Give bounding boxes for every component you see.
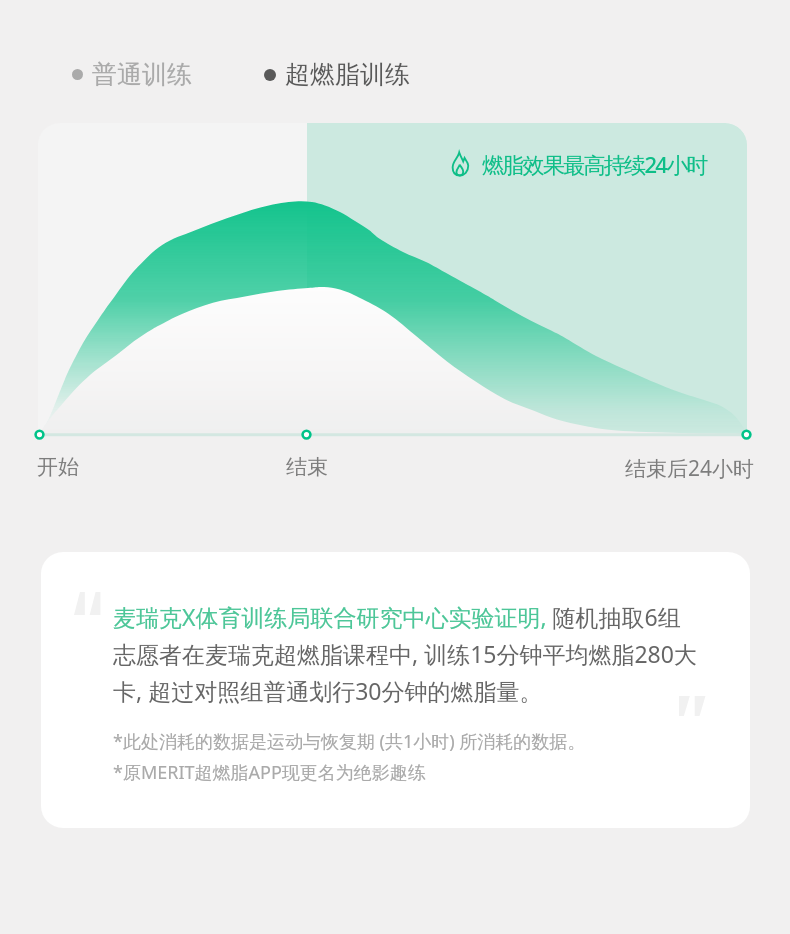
staticText: 超燃脂训练 bbox=[285, 59, 410, 90]
staticText: 开始 bbox=[37, 454, 79, 480]
staticText: *原MERIT超燃脂APP现更名为绝影趣练 bbox=[113, 760, 426, 785]
button[interactable]: 超燃脂训练 bbox=[264, 59, 410, 90]
staticText: 燃脂效果最高持续24小时 bbox=[482, 149, 707, 179]
button[interactable]: 普通训练 bbox=[72, 59, 192, 90]
staticText: 麦瑞克X体育训练局联合研究中心实验证明, 随机抽取6组志愿者在麦瑞克超燃脂课程中… bbox=[113, 601, 699, 707]
staticText: 结束 bbox=[286, 454, 328, 480]
staticText: 普通训练 bbox=[92, 59, 192, 90]
staticText: *此处消耗的数据是运动与恢复期 (共1小时) 所消耗的数据。 bbox=[113, 729, 586, 754]
staticText: 结束后24小时 bbox=[625, 454, 755, 483]
